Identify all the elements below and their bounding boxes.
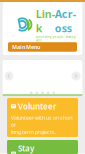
staticText: Volunteer with us on short or [11, 114, 73, 128]
staticText: connecting people, sharing skills [36, 35, 76, 42]
staticText: Stay Connected [18, 143, 60, 154]
staticText: Volunteer [18, 101, 56, 112]
button[interactable]: Next [71, 71, 80, 80]
staticText: Click here to read more [11, 138, 66, 145]
staticText: Main Menu [12, 43, 40, 50]
button[interactable]: Volunteer [7, 98, 78, 137]
button[interactable]: Previous [4, 71, 13, 80]
button[interactable]: Stay Connected [7, 140, 78, 154]
staticText: long term projects. [11, 128, 56, 135]
staticText: Across [55, 7, 76, 35]
button[interactable]: Main Menu [8, 42, 77, 52]
staticText: Link [36, 7, 55, 35]
